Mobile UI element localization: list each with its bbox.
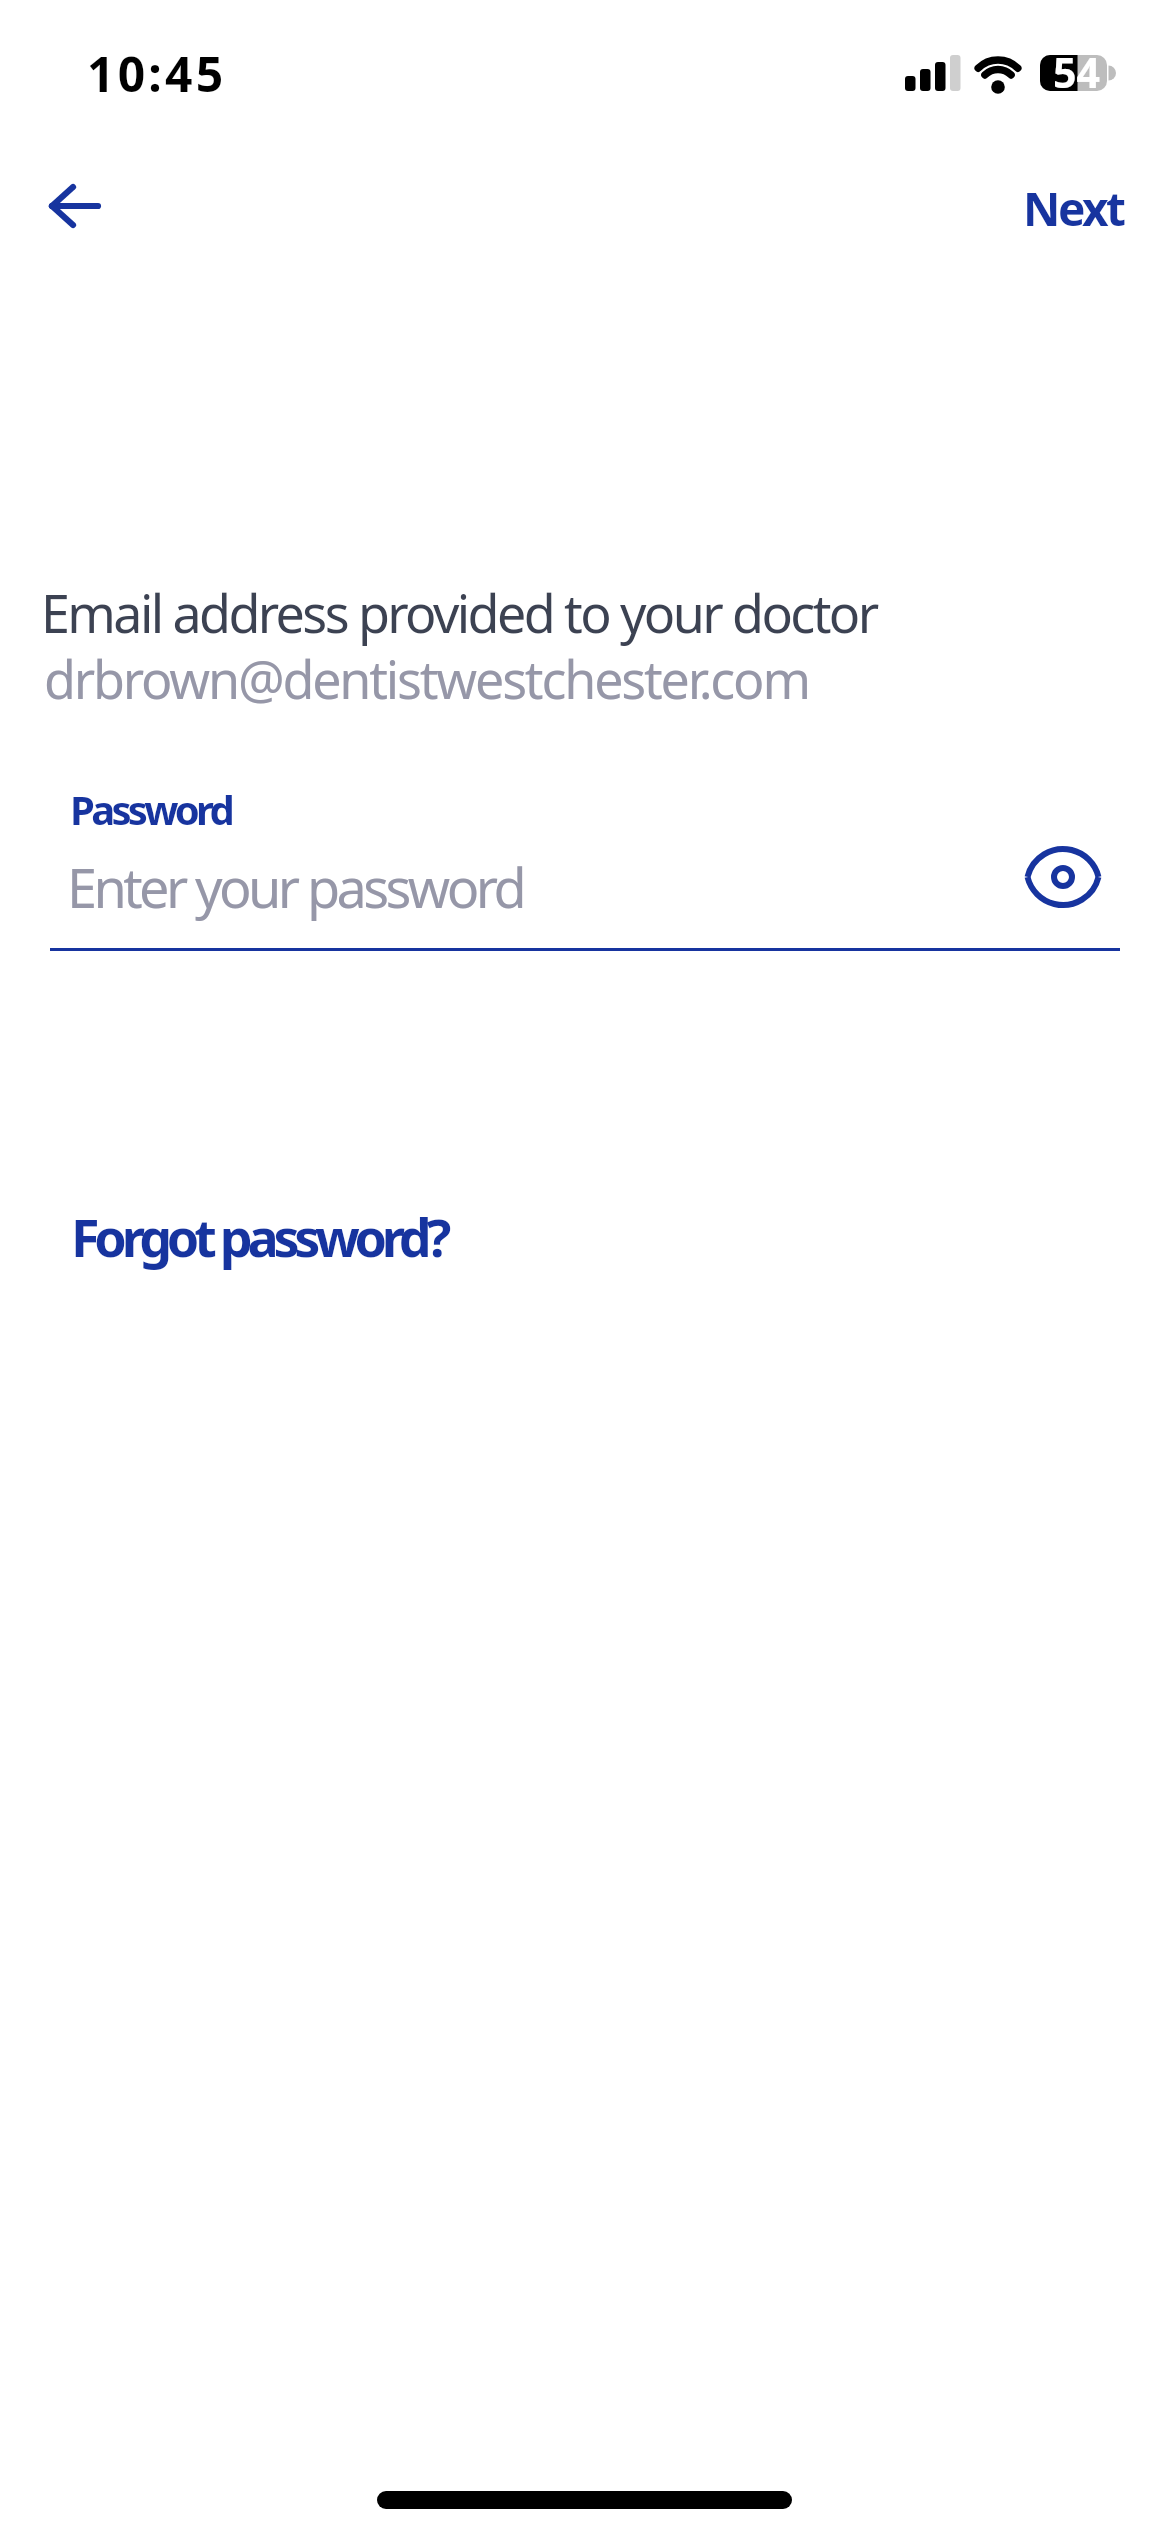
staticText: Password [70, 782, 231, 836]
button[interactable]: Forgot password? [57, 1189, 461, 1284]
button[interactable] [1018, 839, 1108, 915]
button[interactable]: Next [980, 165, 1155, 245]
staticText: Forgot password? [71, 1201, 447, 1272]
staticText: 54 [1053, 44, 1100, 100]
button[interactable] [30, 168, 120, 244]
staticText: 10:45 [87, 41, 227, 106]
staticText: Email address provided to your doctor [41, 577, 877, 648]
staticText: Next [1023, 177, 1124, 240]
staticText: drbrown@dentistwestchester.com [44, 643, 809, 714]
staticText: Enter your password [67, 850, 523, 924]
